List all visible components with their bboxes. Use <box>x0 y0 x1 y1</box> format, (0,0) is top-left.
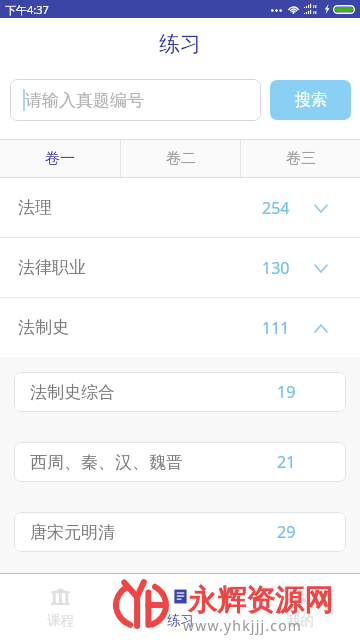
button[interactable]: 卷一 <box>0 140 120 177</box>
staticText: 法制史 <box>18 317 69 338</box>
staticText: 卷二 <box>166 149 196 168</box>
staticText: 练习 <box>167 612 194 629</box>
button[interactable]: 法制史 <box>0 298 360 357</box>
staticText: 练习 <box>159 31 201 57</box>
button[interactable]: 课程 <box>0 574 120 640</box>
staticText: 130 <box>262 257 290 279</box>
staticText: 下午4:37 <box>5 2 49 17</box>
button[interactable]: 唐宋元明清 <box>14 512 346 552</box>
staticText: 请输入真题编号 <box>25 90 144 111</box>
staticText: 西周、秦、汉、魏晋 <box>30 452 183 473</box>
staticText: 法制史综合 <box>30 382 115 403</box>
staticText: 19 <box>277 381 296 403</box>
button[interactable]: 法制史综合 <box>14 372 346 412</box>
staticText: 我的 <box>287 612 314 629</box>
button[interactable]: 请输入真题编号 <box>10 79 261 121</box>
button[interactable]: 练习 <box>120 574 240 640</box>
staticText: 唐宋元明清 <box>30 522 115 543</box>
staticText: 卷三 <box>286 149 316 168</box>
button[interactable]: 法理 <box>0 178 360 237</box>
staticText: 法理 <box>18 197 52 218</box>
button[interactable]: 我的 <box>240 574 360 640</box>
staticText: 254 <box>262 197 290 219</box>
staticText: 课程 <box>47 612 74 629</box>
staticText: www.yhkjjj.com <box>183 616 303 635</box>
staticText: 法律职业 <box>18 257 86 278</box>
button[interactable]: 卷二 <box>121 140 240 177</box>
button[interactable]: 西周、秦、汉、魏晋 <box>14 442 346 482</box>
button[interactable]: 卷三 <box>241 140 360 177</box>
button[interactable]: 法律职业 <box>0 238 360 297</box>
staticText: 搜索 <box>295 90 327 110</box>
staticText: 111 <box>262 317 290 339</box>
staticText: 卷一 <box>45 149 75 168</box>
button[interactable]: 搜索 <box>270 80 351 120</box>
staticText: 29 <box>277 521 296 543</box>
staticText: 21 <box>277 451 296 473</box>
staticText: 永辉资源网 <box>188 582 333 619</box>
